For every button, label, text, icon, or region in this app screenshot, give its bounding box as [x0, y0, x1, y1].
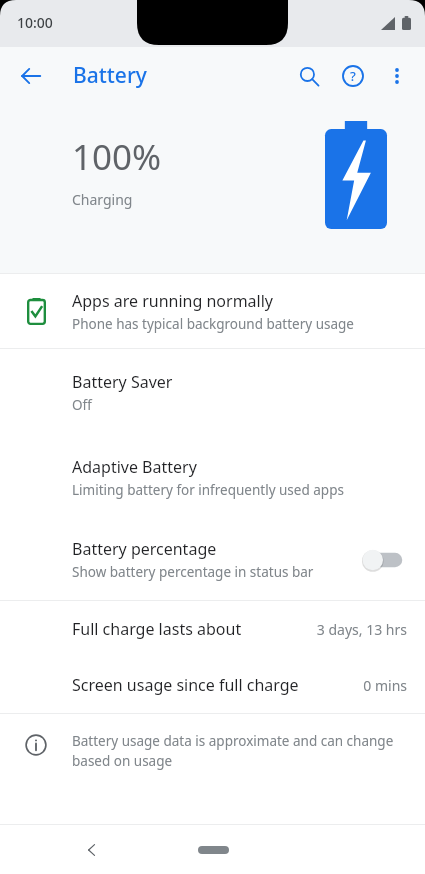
button[interactable]: Search [287, 54, 331, 98]
staticText: 0 mins [363, 676, 407, 695]
staticText: Adaptive Battery [72, 456, 197, 478]
button[interactable]: Back [10, 55, 52, 97]
staticText: Battery usage data is approximate and ca… [72, 732, 403, 770]
staticText: Charging [72, 190, 133, 209]
button[interactable]: Help [331, 54, 375, 98]
button[interactable]: Battery percentage toggle [359, 545, 405, 575]
button[interactable]: Apps are running normally [0, 274, 425, 348]
button[interactable]: Home [183, 838, 243, 862]
button[interactable]: More options [375, 54, 419, 98]
button[interactable]: Screen usage since full charge [0, 657, 425, 713]
staticText: Limiting battery for infrequently used a… [72, 481, 344, 499]
staticText: Phone has typical background battery usa… [72, 315, 354, 333]
button[interactable]: Battery Saver [0, 349, 425, 436]
staticText: ? [350, 67, 356, 85]
button[interactable]: Full charge lasts about [0, 601, 425, 657]
staticText: Full charge lasts about [72, 618, 316, 640]
button[interactable]: Battery percentage [0, 519, 425, 600]
staticText: 10:00 [17, 13, 53, 32]
staticText: Show battery percentage in status bar [72, 563, 314, 581]
staticText: Battery percentage [72, 538, 217, 560]
button[interactable]: Adaptive Battery [0, 436, 425, 519]
staticText: 3 days, 13 hrs [316, 620, 407, 639]
staticText: Apps are running normally [72, 290, 273, 312]
staticText: Battery Saver [72, 371, 173, 393]
staticText: Battery [73, 61, 147, 90]
button[interactable]: Back [72, 830, 112, 870]
staticText: 100% [72, 133, 162, 181]
staticText: Off [72, 396, 92, 414]
staticText: Screen usage since full charge [72, 674, 363, 696]
